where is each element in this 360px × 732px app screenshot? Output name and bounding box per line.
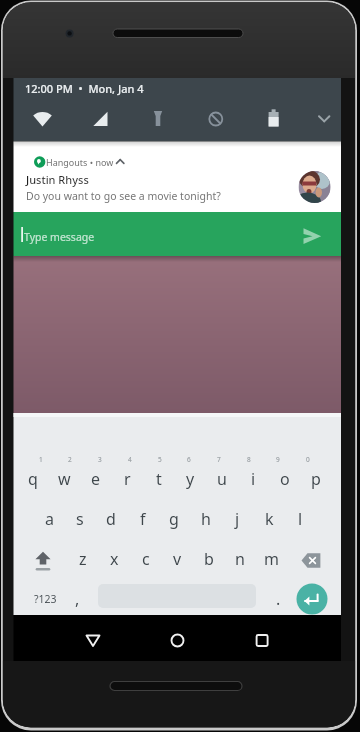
staticText: f <box>140 508 146 530</box>
staticText: t <box>156 468 162 490</box>
staticText: Justin Rhyss <box>26 172 89 187</box>
staticText: 9 <box>276 455 280 464</box>
staticText: w <box>58 468 71 490</box>
staticText: 12:00 PM • Mon, Jan 4 <box>25 81 144 96</box>
button[interactable] <box>14 212 294 256</box>
button[interactable] <box>20 540 64 576</box>
staticText: 4 <box>128 455 132 464</box>
button[interactable] <box>310 106 338 132</box>
staticText: 2 <box>68 455 72 464</box>
button[interactable] <box>159 628 195 654</box>
staticText: Do you want to go see a movie tonight? <box>26 189 221 203</box>
staticText: q <box>28 468 38 490</box>
button[interactable] <box>14 142 342 213</box>
staticText: 5 <box>158 455 162 464</box>
staticText: e <box>91 468 101 490</box>
staticText: 0 <box>306 455 310 464</box>
button[interactable] <box>244 628 280 654</box>
staticText: Hangouts • now <box>46 156 114 168</box>
staticText: . <box>276 588 281 610</box>
staticText: m <box>264 548 279 570</box>
button[interactable] <box>297 584 327 614</box>
staticText: g <box>169 508 179 530</box>
button[interactable] <box>293 540 333 576</box>
staticText: o <box>280 468 290 490</box>
staticText: d <box>106 508 116 530</box>
staticText: l <box>298 508 303 530</box>
staticText: z <box>79 548 87 570</box>
staticText: 6 <box>187 455 191 464</box>
staticText: s <box>76 508 84 530</box>
staticText: 3 <box>98 455 102 464</box>
staticText: r <box>124 468 131 490</box>
staticText: v <box>173 548 182 570</box>
button[interactable] <box>75 628 111 654</box>
staticText: u <box>217 468 227 490</box>
staticText: b <box>204 548 214 570</box>
staticText: i <box>251 468 256 490</box>
staticText: c <box>142 548 150 570</box>
staticText: 1 <box>39 455 43 464</box>
staticText: n <box>235 548 245 570</box>
staticText: j <box>235 508 240 530</box>
staticText: 8 <box>247 455 251 464</box>
staticText: p <box>311 468 321 490</box>
staticText: 7 <box>217 455 221 464</box>
staticText: y <box>186 468 195 490</box>
staticText: x <box>110 548 119 570</box>
button[interactable] <box>295 220 329 250</box>
staticText: Type message <box>24 230 95 244</box>
staticText: a <box>45 508 54 530</box>
staticText: ?123 <box>34 592 57 606</box>
staticText: k <box>265 508 274 530</box>
staticText: h <box>201 508 211 530</box>
staticText: , <box>75 588 80 610</box>
